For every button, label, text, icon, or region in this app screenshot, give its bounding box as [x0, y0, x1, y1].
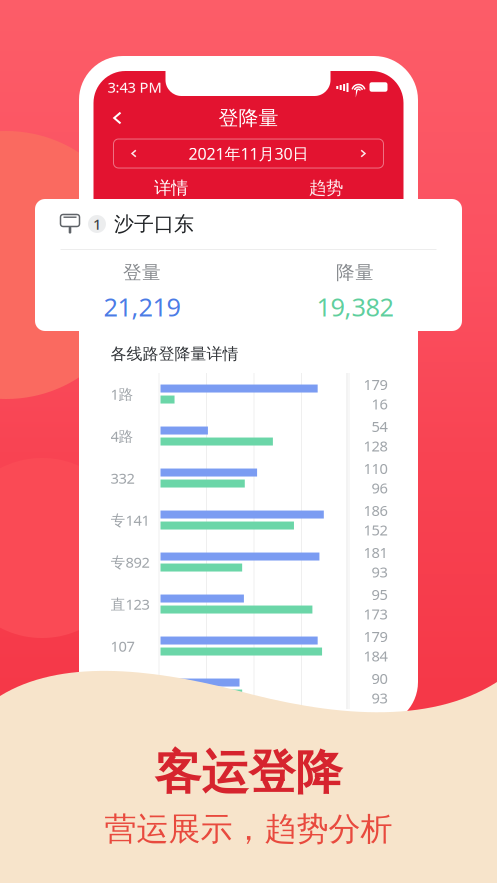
staticText: 93 [371, 688, 387, 707]
staticText: 趋势 [309, 177, 343, 198]
staticText: 客运登降 [154, 744, 342, 801]
button[interactable]: Back [103, 104, 131, 132]
staticText: 营运展示，趋势分析 [104, 809, 392, 849]
staticText: 93 [371, 562, 387, 581]
staticText: 54 [371, 416, 387, 436]
staticText: 沙子口东 [114, 212, 194, 236]
button[interactable]: 1 [35, 199, 462, 249]
staticText: 179 [363, 374, 387, 394]
staticText: 详情 [154, 177, 188, 198]
staticText: 各线路登降量详情 [110, 344, 238, 364]
staticText: 专141 [110, 510, 149, 530]
button[interactable]: 详情 [93, 173, 248, 205]
staticText: 19,382 [316, 290, 393, 323]
staticText: 3:43 PM [107, 77, 161, 97]
staticText: 181 [363, 542, 387, 562]
staticText: 184 [363, 646, 387, 665]
staticText: 16 [371, 394, 387, 413]
button[interactable]: 趋势 [248, 173, 403, 205]
staticText: 128 [363, 436, 387, 455]
staticText: 4路 [110, 426, 133, 446]
staticText: 332 [110, 468, 134, 488]
staticText: 179 [363, 626, 387, 646]
staticText: 专892 [110, 552, 149, 572]
button[interactable]: 2021年11月30日 [113, 139, 383, 168]
staticText: 登量 [123, 261, 161, 284]
staticText: 107 [110, 636, 134, 656]
staticText: 21,219 [103, 290, 180, 323]
staticText: 110 [363, 458, 387, 478]
staticText: 90 [371, 668, 387, 688]
staticText: 96 [371, 478, 387, 497]
staticText: 95 [371, 584, 387, 604]
staticText: 登降量 [218, 106, 278, 130]
staticText: 1路 [110, 384, 133, 404]
staticText: 173 [363, 604, 387, 623]
staticText: 152 [363, 520, 387, 539]
staticText: 降量 [336, 261, 374, 284]
staticText: 直123 [110, 594, 149, 614]
staticText: 2021年11月30日 [188, 143, 308, 164]
staticText: 186 [363, 500, 387, 520]
staticText: 1 [93, 214, 101, 234]
